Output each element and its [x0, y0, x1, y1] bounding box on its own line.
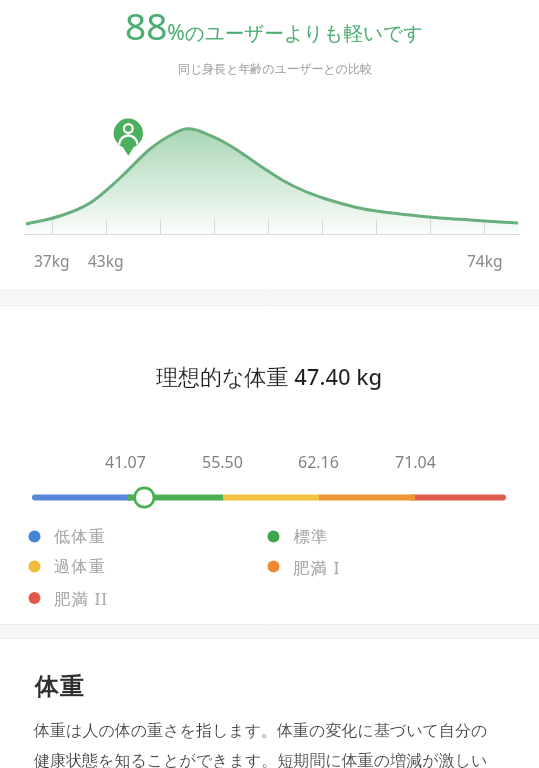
- staticText: 55.50: [202, 451, 243, 473]
- staticText: 体重は人の体の重さを指します。体重の変化に基づいて自分の 健康状態を知ることがで…: [34, 721, 488, 768]
- staticText: 標準: [293, 527, 328, 547]
- staticText: 肥満 II: [54, 588, 109, 610]
- staticText: 同じ身長と年齢のユーザーとの比較: [178, 61, 372, 76]
- button[interactable]: [32, 486, 506, 509]
- staticText: 肥満 I: [293, 557, 341, 579]
- staticText: 88%のユーザーよりも軽いです: [125, 0, 423, 50]
- staticText: 43kg: [88, 250, 124, 271]
- staticText: 過体重: [54, 557, 107, 577]
- staticText: 体重: [34, 672, 84, 702]
- staticText: 理想的な体重 47.40 kg: [156, 361, 383, 391]
- staticText: 74kg: [467, 250, 503, 271]
- staticText: 37kg: [34, 250, 70, 271]
- staticText: 62.16: [298, 451, 339, 473]
- staticText: 71.04: [395, 451, 436, 473]
- staticText: 41.07: [105, 451, 146, 473]
- staticText: 低体重: [54, 527, 107, 547]
